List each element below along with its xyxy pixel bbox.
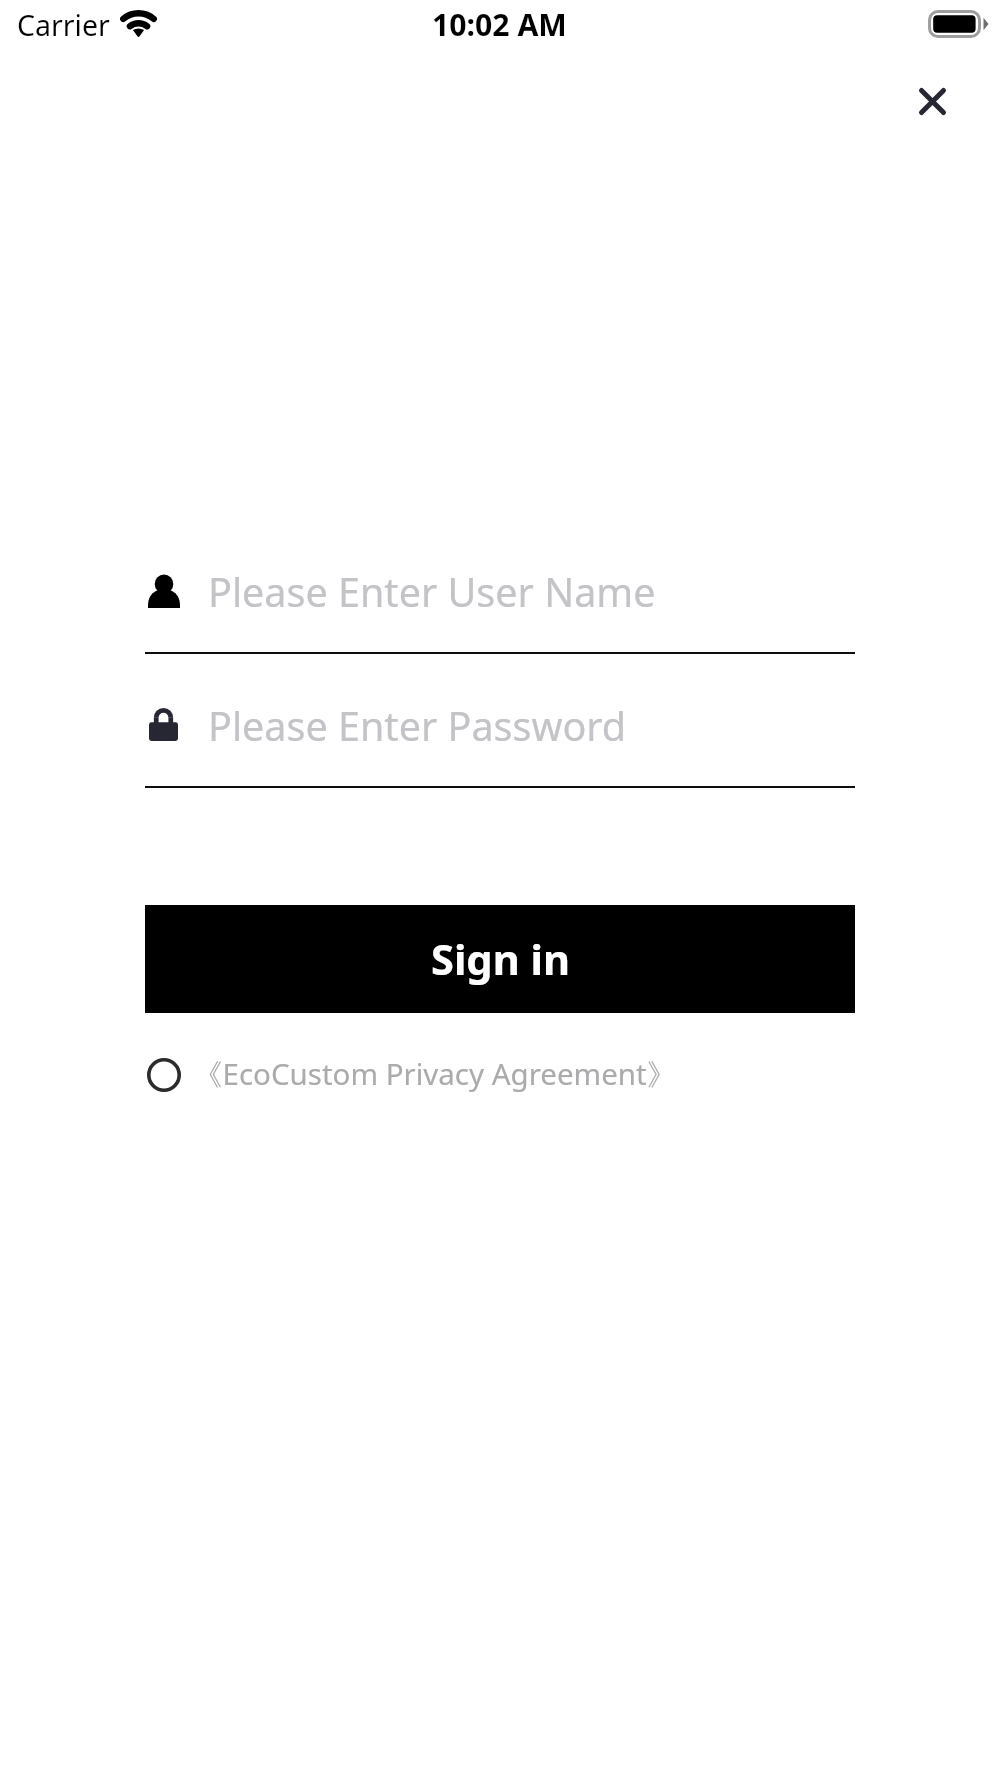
button[interactable] — [145, 560, 855, 654]
button[interactable]: Close — [902, 71, 962, 131]
staticText: 10:02 AM — [432, 4, 567, 45]
staticText: Carrier — [17, 6, 110, 45]
button[interactable] — [145, 694, 855, 788]
button[interactable]: Sign in — [145, 905, 855, 1013]
staticText: Please Enter User Name — [208, 565, 656, 619]
other: Wi-Fi signal — [118, 6, 159, 40]
button[interactable]: 《EcoCustom Privacy Agreement》 — [147, 1043, 663, 1107]
staticText: 《EcoCustom Privacy Agreement》 — [193, 1053, 663, 1093]
staticText: Sign in — [431, 931, 570, 988]
other: Battery full — [928, 10, 988, 38]
staticText: Please Enter Password — [208, 699, 627, 753]
